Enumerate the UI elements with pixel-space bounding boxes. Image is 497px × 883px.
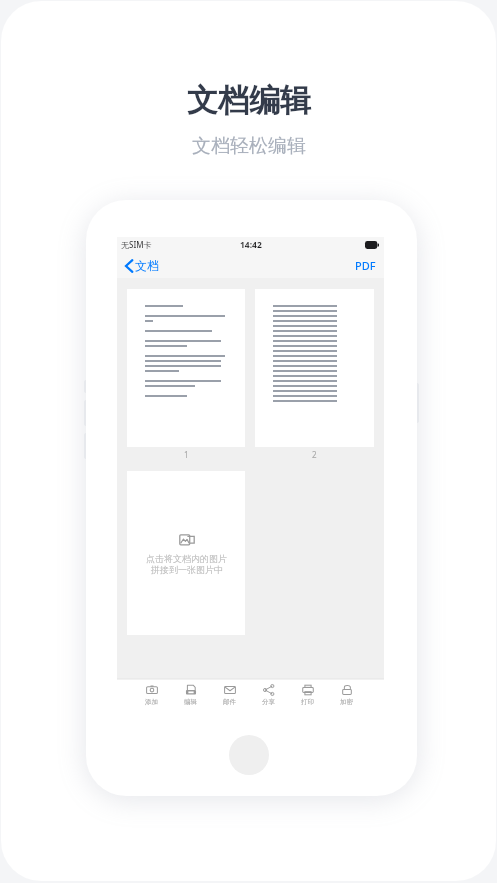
button[interactable]: 打印: [288, 679, 327, 710]
staticText: 文档编辑: [187, 81, 311, 120]
staticText: PDF: [355, 258, 376, 273]
staticText: 1: [184, 449, 189, 460]
staticText: 分享: [262, 698, 275, 706]
staticText: 点击将文档内的图片: [146, 553, 227, 564]
staticText: 加密: [340, 698, 353, 706]
staticText: 编辑: [184, 698, 197, 706]
staticText: 添加: [145, 698, 158, 706]
button[interactable]: 加密: [327, 679, 366, 710]
staticText: 拼接到一张图片中: [151, 564, 223, 575]
button[interactable]: 文档: [117, 255, 165, 276]
staticText: 2: [312, 449, 317, 460]
button[interactable]: [255, 289, 374, 447]
staticText: 14:42: [240, 239, 262, 251]
staticText: 无SIM卡: [121, 239, 152, 250]
staticText: 打印: [301, 698, 314, 706]
button[interactable]: [127, 289, 245, 447]
button[interactable]: 分享: [249, 679, 288, 710]
staticText: 文档轻松编辑: [192, 134, 306, 158]
button[interactable]: 编辑: [171, 679, 210, 710]
button[interactable]: 邮件: [210, 679, 249, 710]
button[interactable]: 添加: [132, 679, 171, 710]
staticText: 文档: [135, 258, 159, 273]
button[interactable]: PDF: [347, 254, 384, 277]
button[interactable]: 点击将文档内的图片: [127, 471, 245, 635]
staticText: 邮件: [223, 698, 236, 706]
